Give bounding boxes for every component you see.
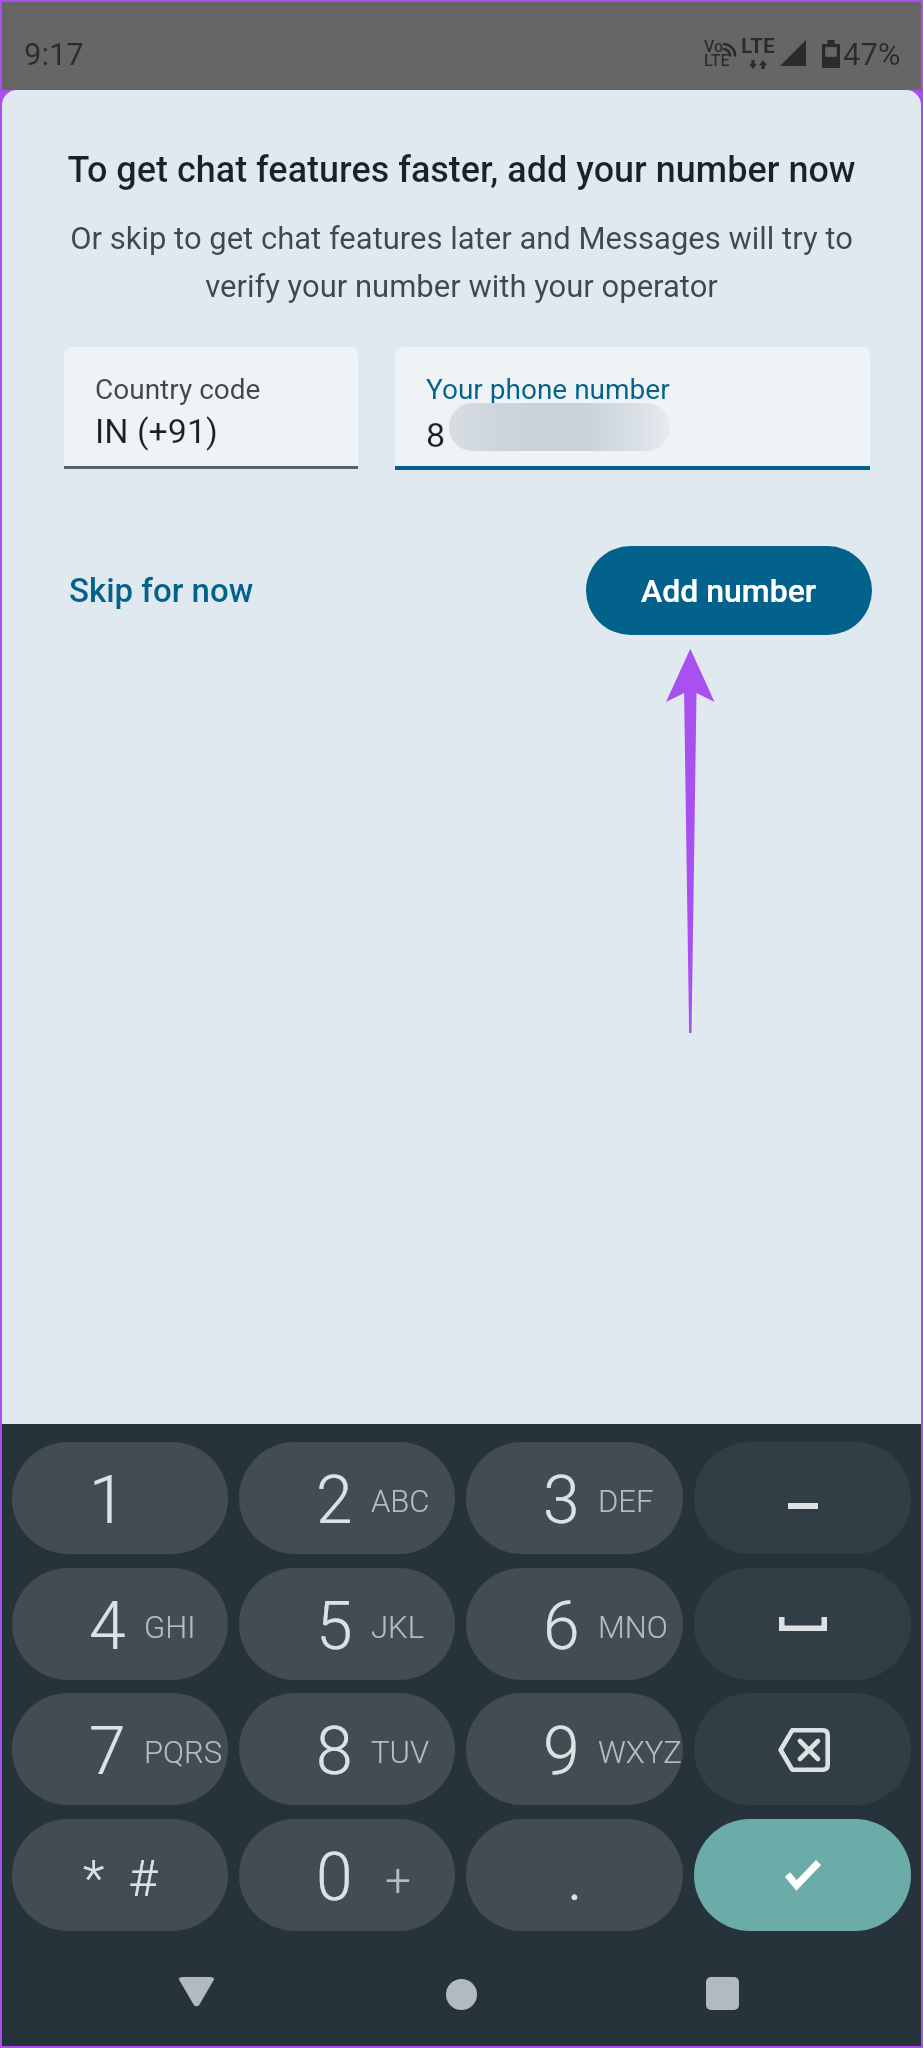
button[interactable]: * # xyxy=(12,1819,228,1931)
staticText: 9:17 xyxy=(24,36,84,72)
staticText: 6 xyxy=(543,1588,580,1665)
button[interactable]: Space xyxy=(694,1568,911,1680)
button[interactable]: Back xyxy=(134,1931,265,2046)
staticText: To get chat features faster, add your nu… xyxy=(30,149,893,191)
staticText: 5 xyxy=(316,1588,353,1665)
staticText: WXYZ xyxy=(598,1734,682,1770)
staticText: 8 xyxy=(316,1713,353,1790)
button[interactable]: 0 xyxy=(239,1819,455,1931)
button[interactable]: Your phone number xyxy=(395,347,870,466)
staticText: . xyxy=(567,1839,583,1916)
staticText: 2 xyxy=(316,1462,353,1539)
staticText: 7 xyxy=(89,1713,126,1790)
button[interactable]: Recents xyxy=(656,1931,787,2046)
staticText: ABC xyxy=(371,1483,430,1519)
button[interactable]: 2 xyxy=(239,1442,455,1554)
staticText: Or skip to get chat features later and M… xyxy=(58,220,865,305)
staticText: 4 xyxy=(89,1588,126,1665)
staticText: IN (+91) xyxy=(95,411,218,451)
staticText: JKL xyxy=(371,1609,424,1645)
button[interactable]: . xyxy=(466,1819,683,1931)
staticText: 8 xyxy=(426,415,446,455)
staticText: * # xyxy=(83,1850,158,1909)
button[interactable]: Add number xyxy=(586,546,872,635)
staticText: + xyxy=(385,1853,411,1907)
button[interactable]: Country code xyxy=(64,347,358,466)
button[interactable]: Backspace xyxy=(694,1693,911,1805)
button[interactable]: 6 xyxy=(466,1568,683,1680)
staticText: 47% xyxy=(843,36,901,72)
staticText: 9 xyxy=(543,1713,580,1790)
button[interactable]: 9 xyxy=(466,1693,683,1805)
staticText: MNO xyxy=(598,1609,668,1645)
staticText: 1 xyxy=(89,1462,126,1539)
staticText: 3 xyxy=(543,1462,580,1539)
staticText: PQRS xyxy=(144,1734,223,1770)
button[interactable]: 1 xyxy=(12,1442,228,1554)
button[interactable]: Done xyxy=(694,1819,911,1931)
button[interactable]: 8 xyxy=(239,1693,455,1805)
button[interactable]: 3 xyxy=(466,1442,683,1554)
staticText: LTE xyxy=(704,51,730,70)
staticText: Add number xyxy=(641,572,817,610)
staticText: Your phone number xyxy=(426,373,670,406)
staticText: 0 xyxy=(316,1839,353,1916)
staticText: Country code xyxy=(95,373,261,406)
button[interactable]: 5 xyxy=(239,1568,455,1680)
staticText: GHI xyxy=(144,1609,196,1645)
staticText: Vo xyxy=(704,37,724,56)
staticText: LTE xyxy=(741,34,775,59)
button[interactable]: 4 xyxy=(12,1568,228,1680)
staticText: DEF xyxy=(598,1483,654,1519)
button[interactable]: Home xyxy=(396,1931,527,2046)
button[interactable]: Dash xyxy=(694,1442,911,1554)
staticText: TUV xyxy=(371,1734,430,1770)
button[interactable]: Skip for now xyxy=(64,559,259,622)
button[interactable]: 7 xyxy=(12,1693,228,1805)
staticText: Skip for now xyxy=(69,571,254,610)
